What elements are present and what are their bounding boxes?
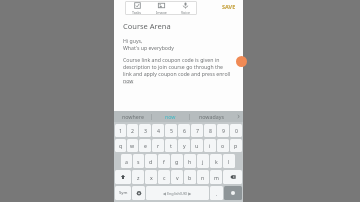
button[interactable]: f	[158, 154, 170, 168]
staticText: 8	[209, 127, 212, 134]
button[interactable]: d	[145, 154, 157, 168]
button[interactable]: .	[210, 186, 223, 200]
button[interactable]: 7	[191, 124, 203, 137]
button[interactable]: l	[223, 154, 235, 168]
button[interactable]: r	[152, 139, 164, 152]
button[interactable]: g	[171, 154, 183, 168]
button[interactable]: a	[121, 154, 132, 168]
button[interactable]: ◀ English(UK) ▶	[146, 186, 209, 200]
button[interactable]: Backspace	[223, 170, 242, 184]
staticText: Voice	[181, 10, 190, 15]
staticText: 7	[196, 127, 199, 134]
button[interactable]: 3	[139, 124, 151, 137]
staticText: d	[149, 158, 153, 165]
staticText: Tasks	[132, 10, 142, 15]
staticText: l	[228, 158, 230, 165]
button[interactable]: u	[191, 139, 203, 152]
button[interactable]: 5	[165, 124, 177, 137]
button[interactable]: 4	[152, 124, 164, 137]
button[interactable]: c	[158, 170, 170, 184]
button[interactable]: now	[152, 111, 189, 122]
staticText: nowhere	[122, 113, 144, 120]
button[interactable]: q	[115, 139, 126, 152]
staticText: y	[183, 142, 186, 149]
staticText: x	[150, 174, 153, 181]
staticText: nowadays	[199, 113, 224, 120]
staticText: Image	[156, 10, 167, 15]
staticText: 6	[183, 127, 186, 134]
staticText: Course Arena	[123, 21, 171, 31]
staticText: Course link and coupon code is given in	[123, 56, 220, 63]
button[interactable]: Sym	[115, 186, 131, 200]
staticText: link and apply coupon code and press enr…	[123, 70, 231, 77]
staticText: h	[188, 158, 192, 165]
staticText: m	[214, 174, 219, 181]
staticText: description to join course go through th…	[123, 63, 224, 70]
button[interactable]: s	[133, 154, 144, 168]
button[interactable]: k	[210, 154, 222, 168]
button[interactable]: nowadays	[190, 111, 233, 122]
staticText: SAVE	[222, 3, 236, 10]
staticText: u	[195, 142, 199, 149]
staticText: p	[234, 142, 238, 149]
staticText: b	[188, 174, 192, 181]
button[interactable]: 9	[217, 124, 229, 137]
button[interactable]: 2	[127, 124, 138, 137]
button[interactable]: 8	[204, 124, 216, 137]
button[interactable]: 0	[230, 124, 242, 137]
staticText: f	[163, 158, 165, 165]
button[interactable]: 6	[178, 124, 190, 137]
button[interactable]: z	[132, 170, 144, 184]
button[interactable]: b	[184, 170, 196, 184]
staticText: j	[202, 158, 204, 165]
staticText: o	[221, 142, 225, 149]
staticText: ◀ English(UK) ▶	[163, 191, 192, 196]
staticText: k	[215, 158, 218, 165]
button[interactable]: y	[178, 139, 190, 152]
button[interactable]: t	[165, 139, 177, 152]
button[interactable]: Enter	[224, 186, 242, 200]
button[interactable]: x	[145, 170, 157, 184]
button[interactable]: More suggestions	[233, 111, 243, 122]
staticText: Sym	[119, 190, 128, 196]
staticText: now	[123, 77, 134, 84]
button[interactable]: h	[184, 154, 196, 168]
staticText: e	[144, 142, 147, 149]
button[interactable]: w	[127, 139, 138, 152]
staticText: c	[163, 174, 166, 181]
button[interactable]: n	[197, 170, 209, 184]
button[interactable]: o	[217, 139, 229, 152]
staticText: 0	[235, 127, 238, 134]
staticText: 1	[119, 127, 122, 134]
button[interactable]: i	[204, 139, 216, 152]
staticText: t	[170, 142, 172, 149]
staticText: s	[137, 158, 140, 165]
button[interactable]: Image	[149, 1, 173, 15]
staticText: 4	[157, 127, 160, 134]
staticText: g	[175, 158, 179, 165]
button[interactable]: Shift	[115, 170, 131, 184]
staticText: 5	[170, 127, 173, 134]
staticText: v	[176, 174, 179, 181]
button[interactable]: e	[139, 139, 151, 152]
staticText: q	[119, 142, 123, 149]
staticText: What's up everybody	[123, 44, 174, 51]
staticText: n	[201, 174, 205, 181]
button[interactable]: Voice input	[132, 186, 145, 200]
staticText: 9	[222, 127, 225, 134]
button[interactable]: m	[210, 170, 222, 184]
button[interactable]: Voice	[173, 1, 197, 15]
staticText: z	[137, 174, 140, 181]
button[interactable]: nowhere	[114, 111, 151, 122]
staticText: a	[125, 158, 128, 165]
button[interactable]: 1	[115, 124, 126, 137]
button[interactable]: p	[230, 139, 242, 152]
button[interactable]: Tasks	[125, 1, 149, 15]
button[interactable]: SAVE	[222, 3, 236, 10]
button[interactable]: v	[171, 170, 183, 184]
staticText: i	[209, 142, 211, 149]
staticText: r	[157, 142, 160, 149]
staticText: now	[165, 113, 176, 120]
staticText: 3	[144, 127, 147, 134]
button[interactable]: j	[197, 154, 209, 168]
